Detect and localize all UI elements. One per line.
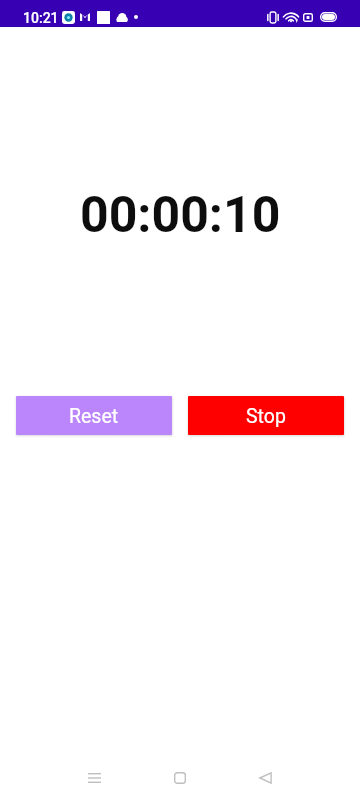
staticText: Reset — [69, 405, 119, 428]
button[interactable]: Home — [157, 755, 203, 800]
button[interactable]: Recent apps — [71, 755, 117, 800]
staticText: Stop — [246, 405, 286, 428]
button[interactable]: Stop — [188, 396, 344, 435]
staticText: 00:00:10 — [80, 186, 281, 245]
button[interactable]: Reset — [16, 396, 172, 435]
button[interactable]: Back — [242, 755, 288, 800]
staticText: 10:21 — [23, 10, 59, 26]
